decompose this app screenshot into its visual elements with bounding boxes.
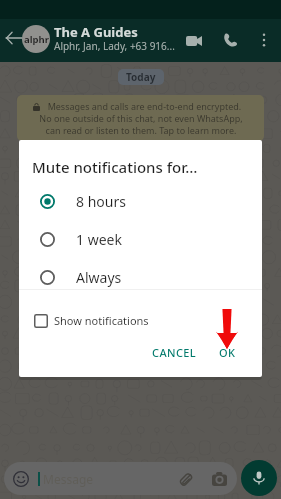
button[interactable]: Today — [118, 69, 164, 85]
button[interactable]: Messages and calls are end-to-end encryp… — [17, 95, 264, 141]
staticText: OK — [219, 345, 236, 360]
staticText: Alphr, Jan, Lady, +63 916... — [54, 39, 175, 53]
button[interactable]: Show notifications — [19, 313, 262, 328]
button[interactable]: Video call — [179, 26, 208, 55]
staticText: Mute notifications for… — [32, 157, 198, 177]
staticText: Message — [43, 471, 94, 487]
staticText: CANCEL — [152, 345, 197, 360]
button[interactable]: OK — [213, 339, 242, 366]
button[interactable]: Voice call — [215, 26, 244, 55]
staticText: Always — [76, 268, 122, 287]
staticText: 8 hours — [76, 192, 126, 211]
button[interactable]: Back — [0, 24, 28, 52]
button[interactable]: Message — [4, 462, 237, 495]
staticText: Today — [126, 70, 156, 84]
button[interactable]: Voice message — [241, 460, 277, 496]
button[interactable]: 1 week — [19, 220, 262, 258]
button[interactable]: CANCEL — [146, 339, 203, 366]
button[interactable]: Always — [19, 258, 262, 296]
staticText: The A Guides — [54, 23, 138, 41]
button[interactable]: alphr — [22, 25, 50, 53]
staticText: 1 week — [76, 230, 122, 249]
button[interactable]: More options — [250, 26, 277, 53]
button[interactable]: 8 hours — [19, 182, 262, 220]
button[interactable]: Camera — [208, 468, 230, 490]
staticText: Show notifications — [54, 313, 149, 328]
button[interactable]: Attach — [175, 468, 197, 490]
staticText: alphr — [24, 33, 49, 46]
staticText: Messages and calls are end-to-end encryp… — [39, 100, 243, 136]
